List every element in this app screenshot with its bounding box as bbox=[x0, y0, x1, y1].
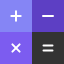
button[interactable]: Equals bbox=[32, 32, 64, 64]
button[interactable]: Multiply bbox=[0, 32, 32, 64]
button[interactable]: Add bbox=[0, 0, 32, 32]
button[interactable]: Subtract bbox=[32, 0, 64, 32]
